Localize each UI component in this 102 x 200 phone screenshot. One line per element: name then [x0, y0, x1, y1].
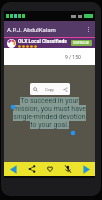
- button[interactable]: Share: [23, 162, 41, 176]
- staticText: DOWNLOAD: [73, 41, 90, 45]
- staticText: 9 / 150: [65, 54, 81, 60]
- button[interactable]: Share: [60, 83, 70, 95]
- staticText: to your goal.: [30, 121, 69, 129]
- button[interactable]: More options: [83, 21, 93, 37]
- staticText: To succeed in your: [20, 97, 79, 105]
- staticText: single-minded devotion: [13, 113, 86, 121]
- staticText: mission, you must have: [13, 105, 86, 113]
- staticText: OLX Local Classifieds: [18, 38, 67, 44]
- staticText: Copy: [45, 87, 55, 92]
- button[interactable]: DOWNLOAD: [71, 40, 92, 46]
- button[interactable]: Search: [30, 83, 40, 95]
- button[interactable]: Previous: [4, 162, 23, 176]
- staticText: A.P.J. AbdulKalam: [7, 26, 56, 33]
- button[interactable]: Next: [77, 162, 95, 176]
- button[interactable]: Favorite: [41, 162, 59, 176]
- button[interactable]: Mute: [59, 162, 77, 176]
- button[interactable]: Copy: [40, 83, 60, 95]
